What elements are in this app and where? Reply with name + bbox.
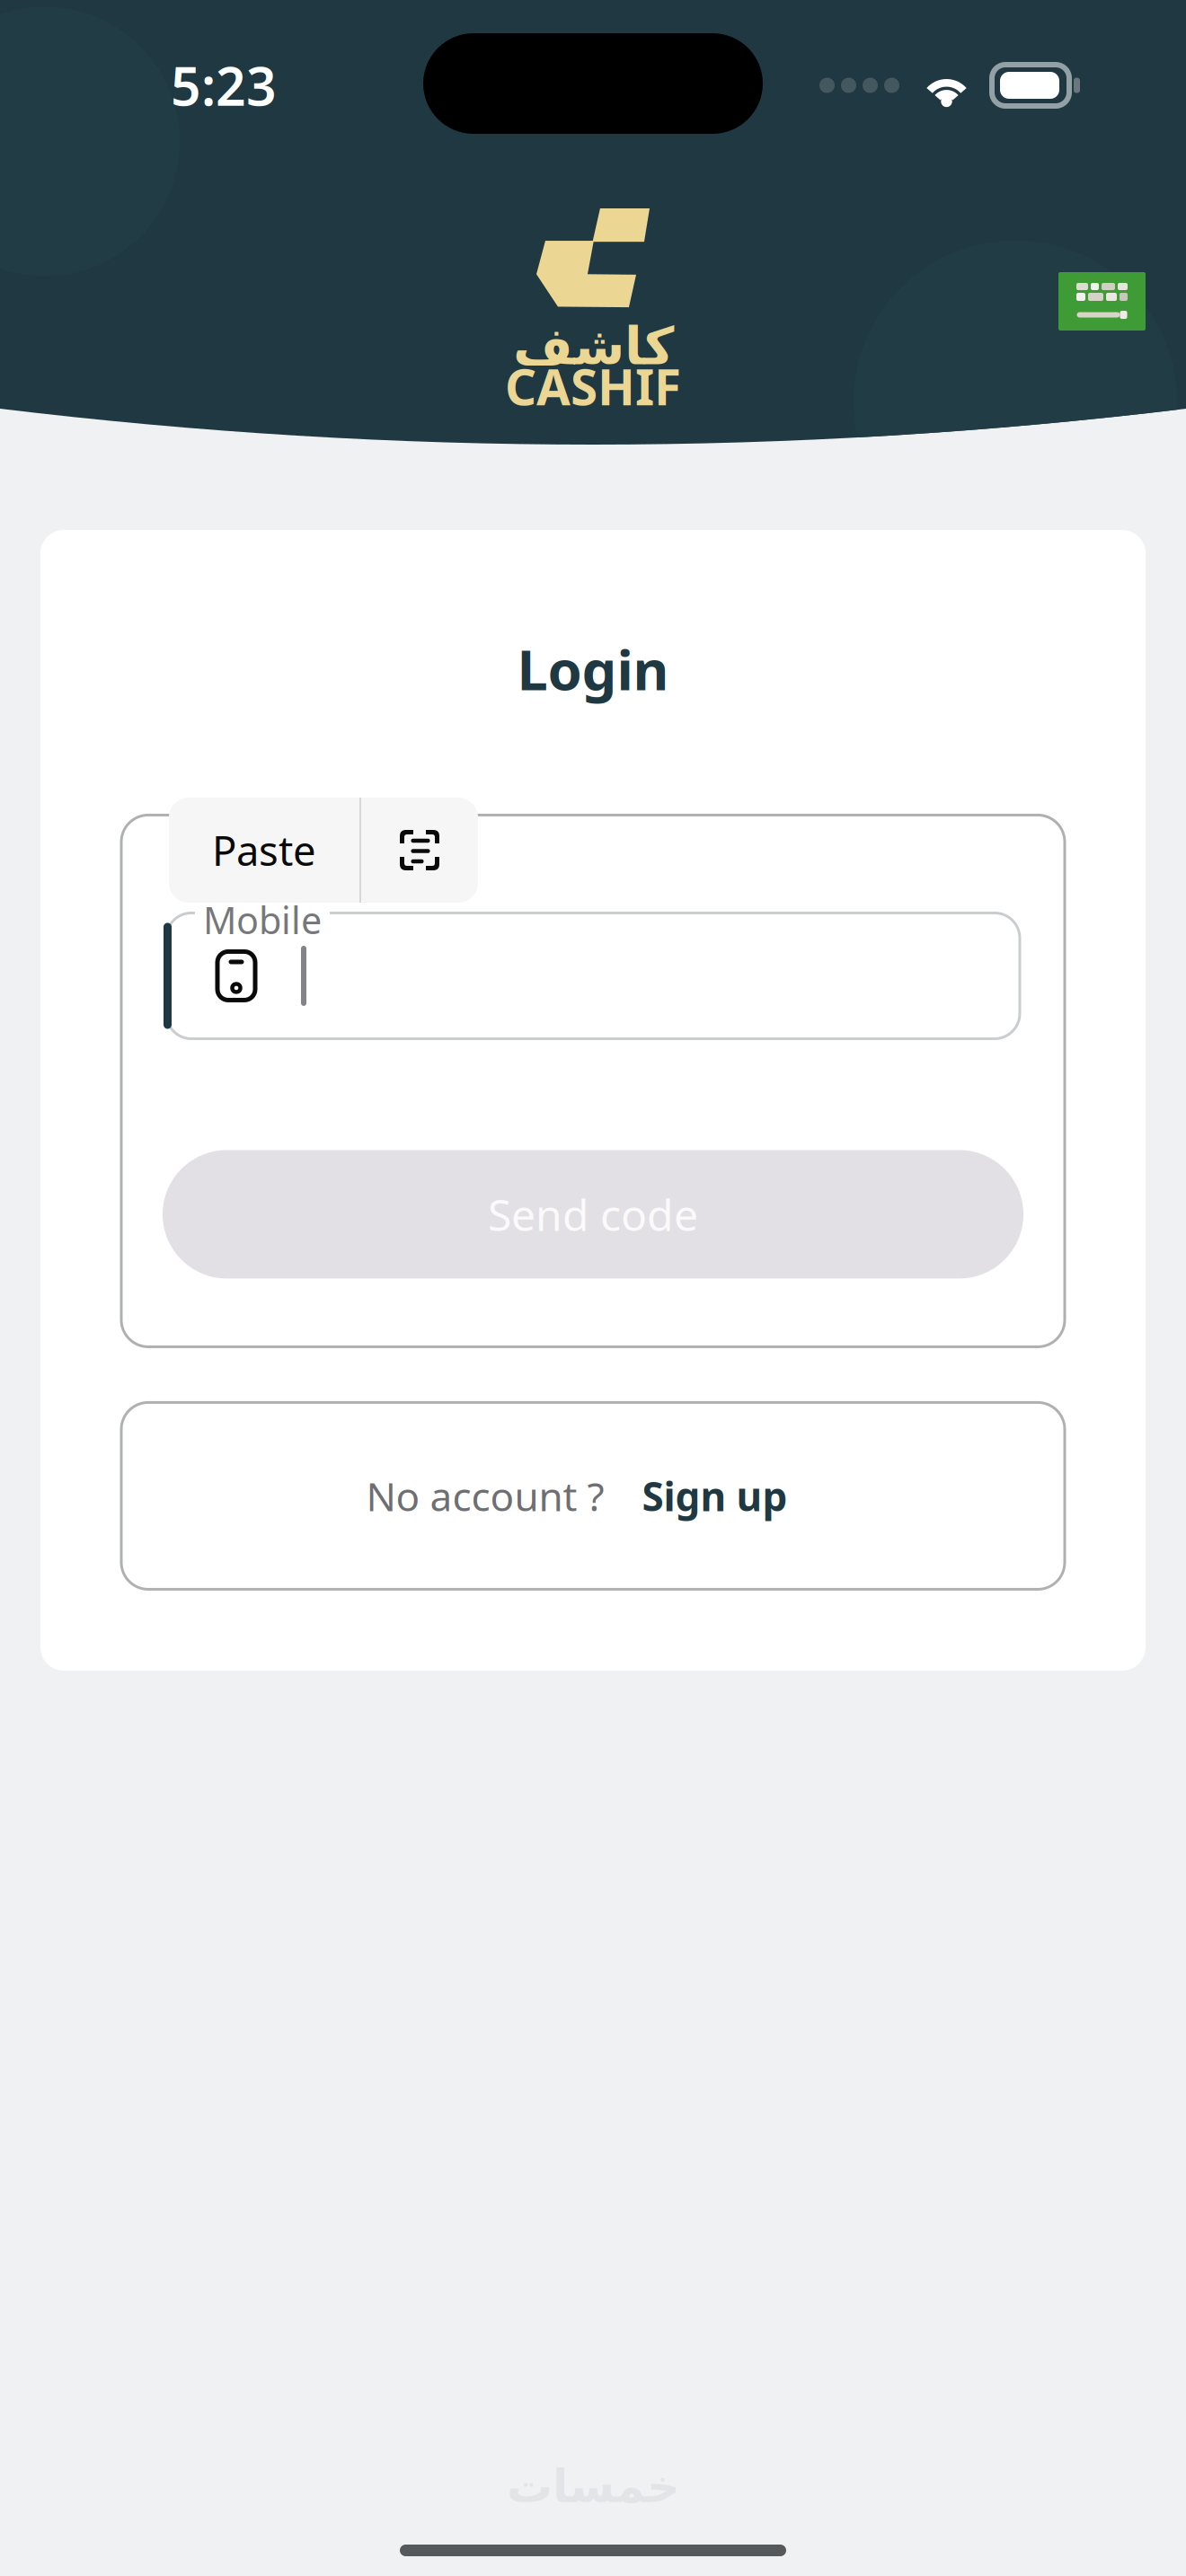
staticText: Sign up <box>642 1470 788 1522</box>
staticText: كاشف <box>513 317 673 376</box>
staticText: خمسات <box>506 2461 680 2512</box>
staticText: 5:23 <box>171 50 277 120</box>
staticText: Login <box>517 632 669 705</box>
button[interactable]: Scan text <box>361 798 478 903</box>
button[interactable]: Change language <box>1058 272 1146 331</box>
staticText: No account ? <box>366 1470 604 1522</box>
button[interactable]: Send code <box>163 1150 1023 1278</box>
staticText: Paste <box>212 823 316 877</box>
button[interactable]: No account ? <box>121 1402 1065 1589</box>
staticText: Send code <box>488 1186 698 1243</box>
staticText: CASHIF <box>505 354 681 419</box>
button[interactable]: Paste <box>169 798 359 903</box>
staticText: Mobile <box>203 895 322 944</box>
